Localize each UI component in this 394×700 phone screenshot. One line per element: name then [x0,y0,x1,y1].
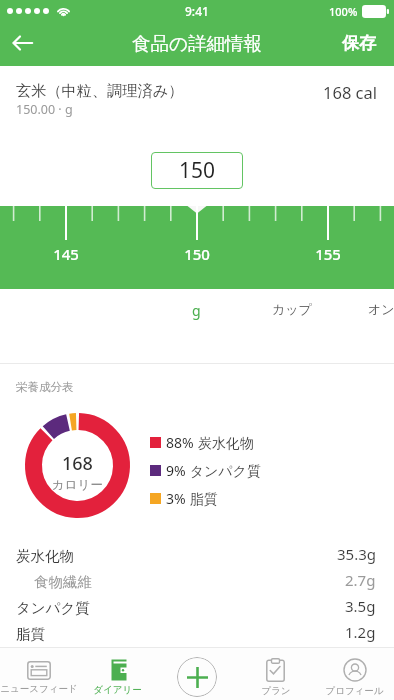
staticText: 9:41 [185,3,209,19]
button[interactable]: 食物繊維 [0,569,394,595]
staticText: 145 [53,244,79,264]
button[interactable]: g [174,293,219,328]
staticText: 食物繊維 [34,573,345,591]
button[interactable]: Add entry [177,657,217,697]
button[interactable]: プラン [236,655,315,700]
staticText: 玄米（中粒、調理済み） [16,81,184,100]
staticText: カロリー [52,477,103,493]
staticText: プロフィール [325,685,384,697]
button[interactable]: ダイアリー [78,655,157,700]
staticText: 炭水化物 [194,433,254,452]
button[interactable]: ニュースフィード [0,655,78,700]
staticText: 150.00 · g [16,101,73,118]
staticText: 3.5g [345,596,376,616]
staticText: 1.2g [345,622,376,642]
staticText: 88% [166,433,194,452]
staticText: 脂質 [186,489,218,508]
button[interactable]: 脂質 [0,621,394,647]
staticText: タンパク質 [16,599,345,617]
staticText: 食品の詳細情報 [132,32,262,55]
staticText: タンパク質 [186,461,261,480]
button[interactable]: プロフィール [315,655,394,700]
staticText: 脂質 [16,625,345,643]
staticText: 150 [184,244,210,264]
button[interactable]: 150 [151,152,243,189]
staticText: オンス [368,301,394,317]
button[interactable]: 3% [150,489,218,508]
button[interactable]: オンス [358,293,394,325]
staticText: ダイアリー [93,684,142,696]
button[interactable]: 9% [150,461,261,480]
staticText: 168 [62,451,93,476]
button[interactable]: 炭水化物 [0,543,394,569]
staticText: 3% [166,489,186,508]
staticText: 168 cal [323,81,378,103]
button[interactable]: 保存 [324,25,394,64]
staticText: 栄養成分表 [16,380,74,394]
staticText: 35.3g [337,544,376,564]
staticText: プラン [261,685,291,697]
staticText: 100% [329,4,358,19]
staticText: 9% [166,461,186,480]
staticText: 炭水化物 [16,547,337,565]
staticText: カップ [272,301,312,317]
button[interactable]: タンパク質 [0,595,394,621]
staticText: g [192,301,201,320]
button[interactable]: カップ [262,293,322,325]
staticText: 155 [315,244,341,264]
staticText: 150 [179,156,216,185]
staticText: 2.7g [345,570,376,590]
staticText: 保存 [342,33,376,54]
button[interactable]: Back [0,22,44,66]
button[interactable]: 88% [150,433,254,452]
staticText: ニュースフィード [0,683,78,695]
